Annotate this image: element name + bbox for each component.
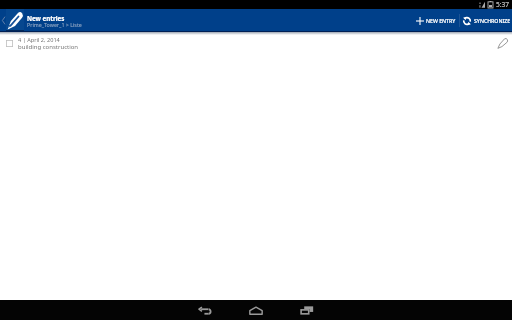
staticText: 4 | April 2, 2014: [18, 36, 60, 44]
button[interactable]: NEW ENTRY: [410, 9, 459, 32]
staticText: 5:37: [496, 0, 510, 9]
button[interactable]: Edit entry: [493, 34, 512, 53]
staticText: Prime_Tower_1 > Liste: [27, 21, 82, 28]
button[interactable]: Back: [180, 300, 230, 320]
button[interactable]: Navigate up: [0, 9, 25, 32]
button[interactable]: Recent apps: [282, 300, 332, 320]
button[interactable]: 4 | April 2, 2014: [0, 34, 512, 53]
staticText: New entries: [27, 14, 65, 22]
button[interactable]: SYNCHRONIZE: [460, 9, 512, 32]
button[interactable]: Home: [231, 300, 281, 320]
staticText: SYNCHRONIZE: [474, 17, 511, 24]
staticText: NEW ENTRY: [426, 17, 456, 24]
staticText: building construction: [18, 43, 79, 51]
